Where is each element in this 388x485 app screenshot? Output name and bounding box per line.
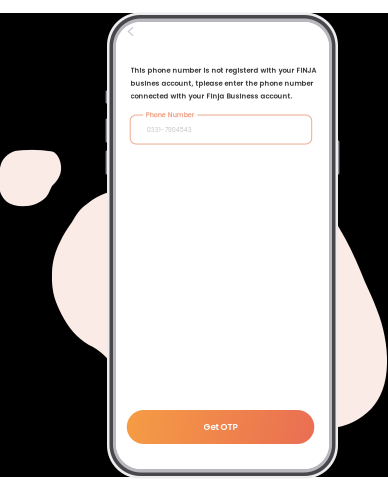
staticText: Get OTP	[204, 421, 238, 433]
button[interactable]: Get OTP	[127, 410, 314, 444]
staticText: 0331-7904543	[147, 125, 192, 134]
staticText: Phone Number	[146, 110, 195, 119]
button[interactable]: Back	[121, 20, 140, 43]
staticText: This phone number is not registerd with …	[130, 65, 316, 101]
